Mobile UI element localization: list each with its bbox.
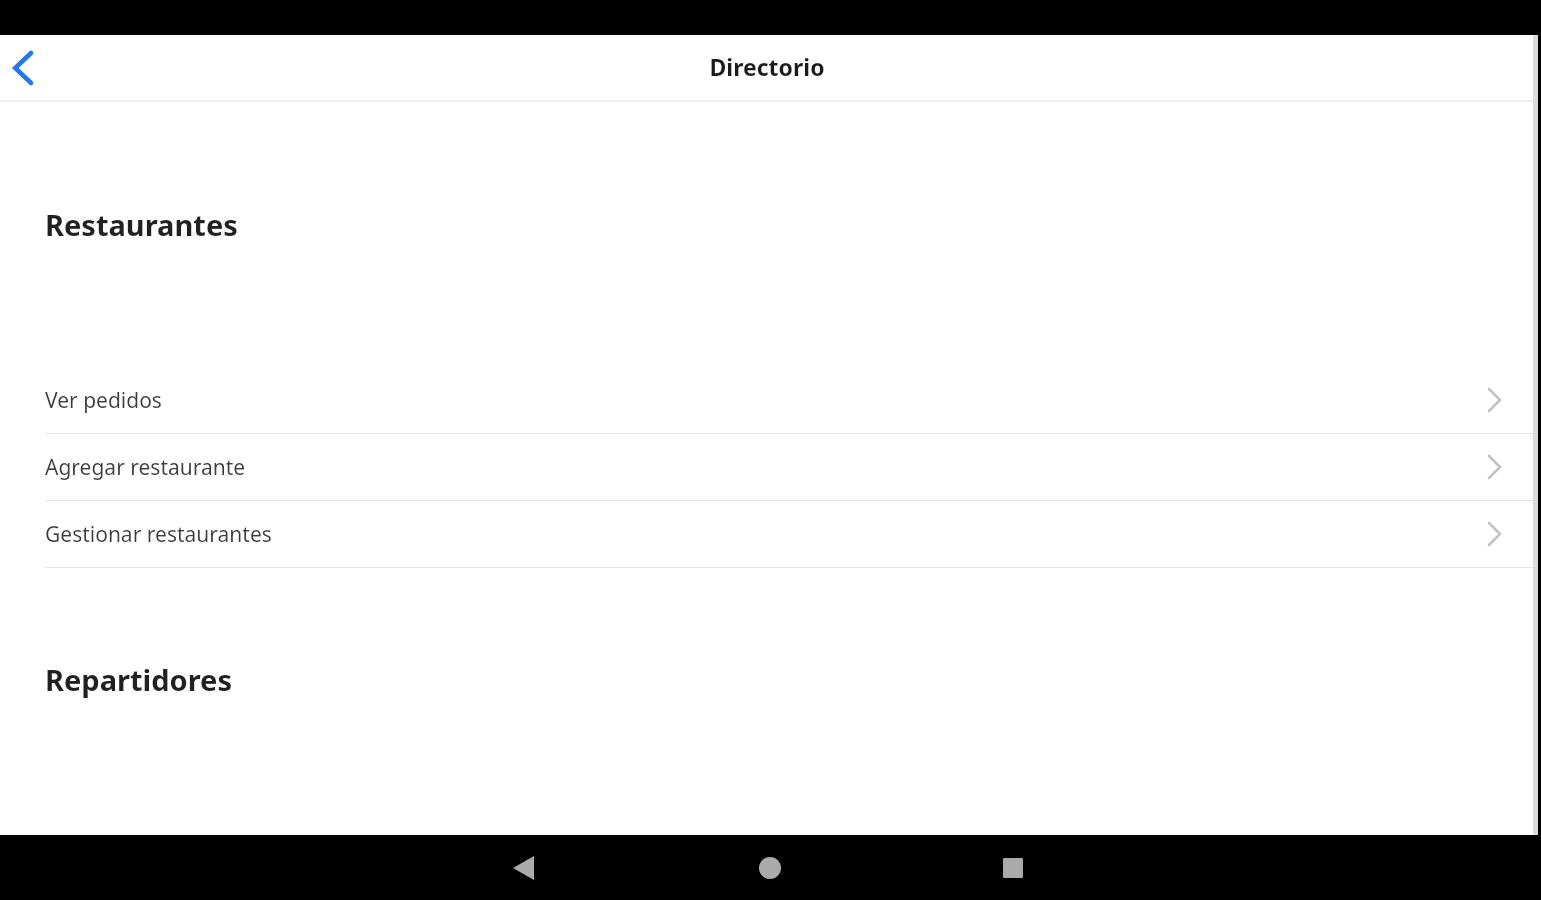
staticText: Restaurantes [45,205,238,244]
button[interactable]: Recent apps [967,835,1059,900]
button[interactable]: Gestionar restaurantes [0,501,1533,567]
button[interactable]: Agregar restaurante [0,434,1533,500]
button[interactable]: Ver pedidos [0,367,1533,433]
staticText: Gestionar restaurantes [45,520,272,549]
button[interactable]: Back [0,38,48,98]
staticText: Agregar restaurante [45,453,246,482]
staticText: Repartidores [45,660,232,699]
staticText: Directorio [709,51,825,82]
staticText: Ver pedidos [45,386,162,415]
button[interactable]: Back [477,835,569,900]
button[interactable]: Home [724,835,816,900]
